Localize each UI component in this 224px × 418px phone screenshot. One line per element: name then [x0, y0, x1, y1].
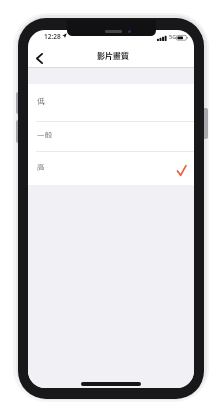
button[interactable]: 高	[28, 152, 194, 185]
staticText: 低	[37, 96, 45, 107]
staticText: 影片畫質	[97, 51, 129, 63]
button[interactable]: 一般	[28, 122, 194, 151]
button[interactable]	[30, 49, 48, 67]
button[interactable]: 低	[28, 84, 194, 121]
staticText: 高	[37, 162, 45, 173]
staticText: 12:28	[44, 32, 61, 41]
staticText: 一般	[37, 130, 52, 141]
staticText: 5G	[169, 33, 177, 40]
